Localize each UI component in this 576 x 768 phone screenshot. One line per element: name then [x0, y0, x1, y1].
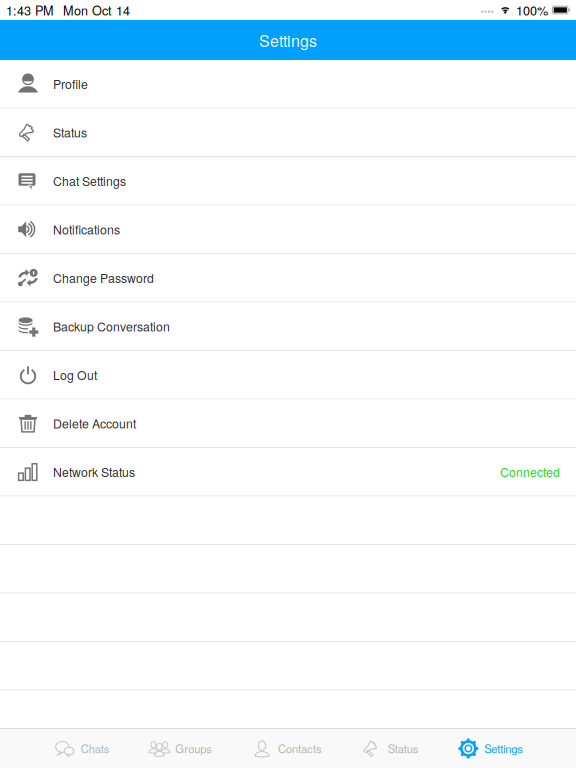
button[interactable]: Delete Account [0, 399, 576, 448]
staticText: Groups [175, 740, 212, 756]
button[interactable]: Network Status [0, 448, 576, 496]
button[interactable]: Status [0, 108, 576, 157]
staticText: Notifications [53, 220, 120, 238]
button[interactable]: Change Password [0, 254, 576, 302]
button[interactable]: Log Out [0, 351, 576, 399]
staticText: Settings [259, 28, 317, 51]
button[interactable]: Settings [449, 729, 532, 767]
staticText: Delete Account [53, 414, 136, 432]
staticText: 1:43 PM [6, 1, 54, 19]
button[interactable]: Contacts [243, 729, 331, 767]
staticText: Status [53, 123, 87, 141]
button[interactable]: Groups [140, 729, 221, 767]
button[interactable]: Chat Settings [0, 157, 576, 205]
button[interactable]: Profile [0, 60, 576, 108]
staticText: Backup Conversation [53, 317, 170, 335]
staticText: Chats [81, 740, 110, 756]
staticText: Change Password [53, 269, 154, 287]
staticText: 100% [516, 1, 548, 19]
staticText: Mon Oct 14 [63, 1, 130, 19]
staticText: Settings [484, 740, 523, 756]
button[interactable]: Notifications [0, 205, 576, 254]
staticText: Status [388, 740, 419, 756]
button[interactable]: Backup Conversation [0, 302, 576, 351]
staticText: Chat Settings [53, 172, 126, 190]
staticText: Connected [500, 463, 560, 481]
staticText: Contacts [278, 740, 322, 756]
staticText: Log Out [53, 366, 97, 384]
staticText: Network Status [53, 463, 135, 481]
button[interactable]: Chats [46, 729, 119, 767]
button[interactable]: Status [353, 729, 428, 767]
staticText: Profile [53, 75, 88, 93]
